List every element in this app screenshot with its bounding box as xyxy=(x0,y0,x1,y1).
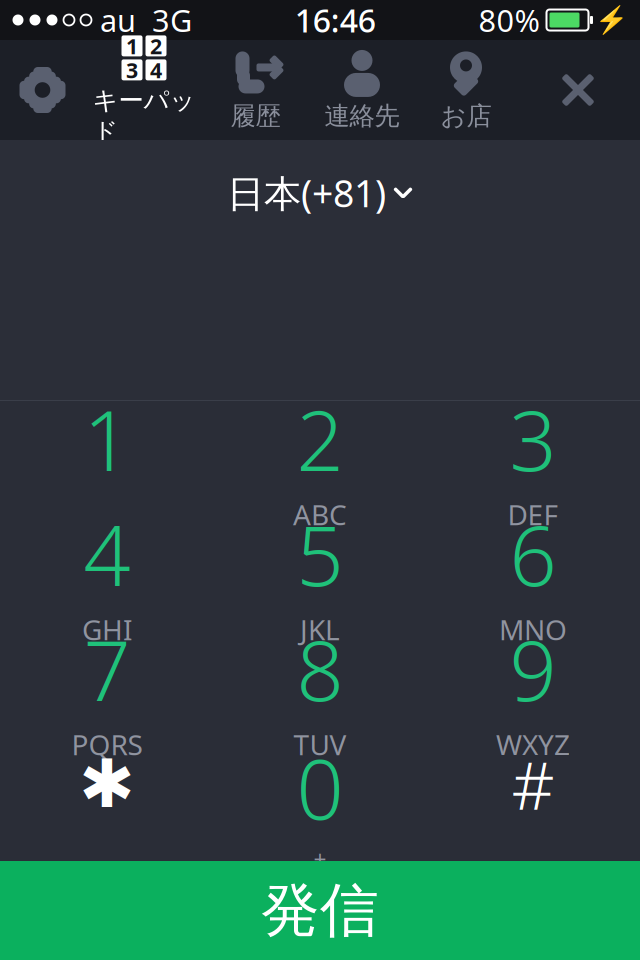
staticText: DEF xyxy=(507,496,558,533)
button[interactable]: 9 xyxy=(426,631,639,746)
button[interactable]: 0 xyxy=(213,746,426,861)
button[interactable]: 2 xyxy=(213,401,426,516)
staticText: MNO xyxy=(499,611,567,648)
staticText: 3 xyxy=(126,56,138,84)
button[interactable]: 5 xyxy=(213,516,426,631)
staticText: TUV xyxy=(293,726,346,763)
staticText: 0 xyxy=(296,733,343,842)
staticText: 16:46 xyxy=(295,0,376,41)
staticText: 8 xyxy=(296,614,343,724)
staticText: 7 xyxy=(83,614,130,724)
button[interactable]: 連絡先 xyxy=(308,40,416,140)
button[interactable]: 設定 xyxy=(0,40,85,140)
button[interactable]: 4 xyxy=(0,516,213,631)
staticText: 6 xyxy=(509,499,556,609)
staticText: 2 xyxy=(296,384,343,494)
button[interactable]: 日本(+81) xyxy=(213,160,427,226)
staticText: WXYZ xyxy=(496,726,570,763)
button[interactable]: 1 xyxy=(0,401,213,516)
staticText: 80% xyxy=(478,0,539,40)
staticText: ABC xyxy=(293,496,347,533)
staticText: # xyxy=(511,740,554,828)
staticText: 2 xyxy=(150,32,162,60)
button[interactable]: # xyxy=(426,746,639,861)
staticText: 5 xyxy=(296,499,343,609)
button[interactable]: 3 xyxy=(426,401,639,516)
staticText: 4 xyxy=(150,56,162,84)
staticText: 連絡先 xyxy=(324,100,399,131)
button[interactable]: 7 xyxy=(0,631,213,746)
staticText: 1 xyxy=(126,32,138,60)
staticText: + xyxy=(313,844,326,874)
staticText: GHI xyxy=(82,611,132,648)
staticText: 日本(+81) xyxy=(227,168,386,218)
staticText: PQRS xyxy=(71,726,142,763)
staticText: お店 xyxy=(440,100,491,131)
button[interactable]: 閉じる xyxy=(516,40,640,140)
staticText: キーパッド xyxy=(92,85,195,147)
staticText: au xyxy=(100,0,136,40)
staticText: 発信 xyxy=(261,874,379,947)
staticText: 4 xyxy=(83,499,130,609)
staticText: 3 xyxy=(509,384,556,494)
staticText: 9 xyxy=(509,614,556,724)
button[interactable]: ✱ xyxy=(0,746,213,861)
staticText: 3G xyxy=(152,0,192,40)
staticText: ✱ xyxy=(79,746,135,822)
staticText: 1 xyxy=(83,384,130,494)
staticText xyxy=(529,830,536,867)
staticText: JKL xyxy=(300,611,340,648)
staticText: ⚡ xyxy=(595,5,628,35)
button[interactable]: 1 xyxy=(85,40,203,140)
button[interactable]: 6 xyxy=(426,516,639,631)
staticText: 履歴 xyxy=(230,100,280,131)
button[interactable]: 発信 xyxy=(0,861,640,960)
button[interactable]: 履歴 xyxy=(203,40,308,140)
button[interactable]: 8 xyxy=(213,631,426,746)
button[interactable]: お店 xyxy=(416,40,516,140)
